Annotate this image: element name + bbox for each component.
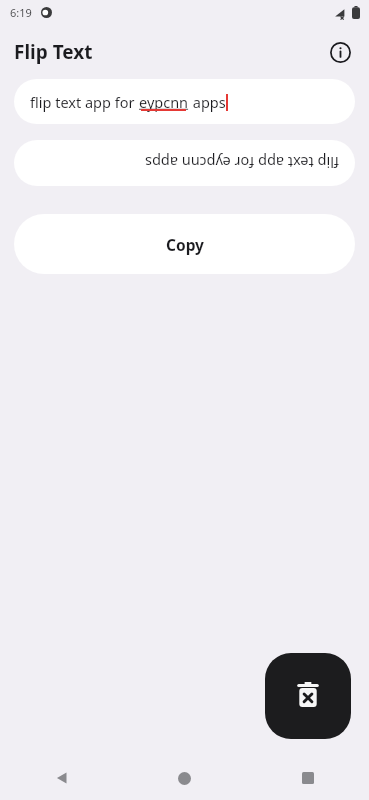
button[interactable]: About [321, 33, 359, 71]
button[interactable]: Copy [14, 214, 355, 274]
button[interactable]: Home [123, 756, 246, 800]
staticText: Flip Text [14, 39, 93, 65]
staticText: flip text app for [30, 92, 139, 112]
button[interactable]: Clear text [265, 653, 351, 739]
button[interactable]: Recent apps [246, 756, 369, 800]
button[interactable]: Back [0, 756, 123, 800]
staticText: apps [189, 92, 226, 112]
staticText: eypcnn [139, 92, 189, 112]
staticText: 6:19 [10, 5, 32, 20]
staticText: flip text app for eypcnn apps [145, 153, 339, 173]
button[interactable]: flip text app for [14, 79, 355, 124]
button[interactable]: flip text app for eypcnn apps [14, 140, 355, 186]
staticText: Copy [166, 234, 204, 255]
